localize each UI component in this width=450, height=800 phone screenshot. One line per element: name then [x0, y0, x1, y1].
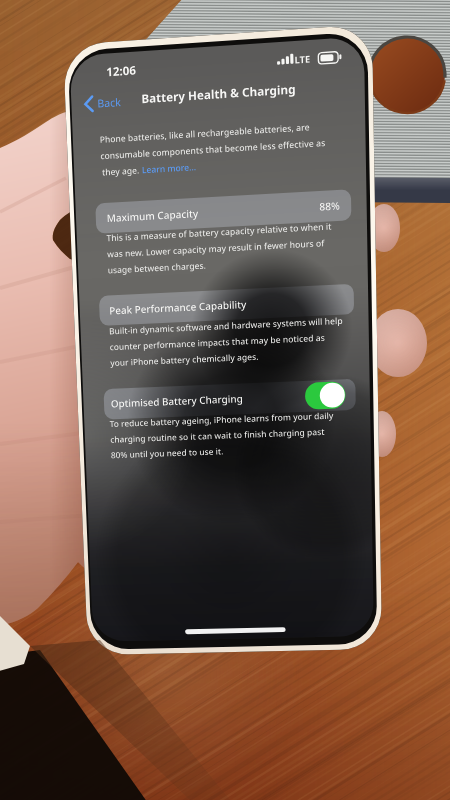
button[interactable]: Back	[78, 88, 136, 116]
button[interactable]: Optimised Battery Charging toggle	[302, 384, 348, 413]
button[interactable]	[99, 288, 356, 326]
button[interactable]	[103, 380, 356, 418]
button[interactable]	[95, 192, 356, 233]
